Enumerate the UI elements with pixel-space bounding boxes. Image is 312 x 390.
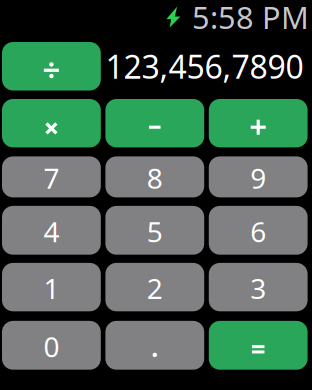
staticText: 0 [43,328,59,365]
button[interactable]: Decimal point [105,321,204,370]
button[interactable]: 3 [209,263,308,311]
button[interactable]: 7 [2,156,101,197]
button[interactable]: Multiply [2,99,101,147]
staticText: 6 [250,213,266,250]
button[interactable]: 5 [105,206,204,255]
button[interactable]: Equals [209,321,308,370]
button[interactable]: 2 [105,263,204,311]
button[interactable]: 4 [2,206,101,255]
staticText: 7 [43,159,59,196]
staticText: 5:58 PM [192,0,309,37]
button[interactable]: 6 [209,206,308,255]
staticText: 1 [43,269,59,307]
button[interactable]: Minus [105,99,204,147]
staticText: 123,456,7890 [105,45,303,87]
button[interactable]: Plus [209,99,308,147]
button[interactable]: 8 [105,156,204,197]
staticText: 2 [147,269,163,307]
button[interactable]: 9 [209,156,308,197]
button[interactable]: Divide [2,42,101,90]
staticText: 8 [147,159,163,196]
staticText: 5 [147,213,163,250]
staticText: 4 [43,213,59,250]
button[interactable]: 1 [2,263,101,311]
staticText: 9 [250,159,266,196]
staticText: 3 [250,269,266,307]
button[interactable]: 0 [2,321,101,370]
